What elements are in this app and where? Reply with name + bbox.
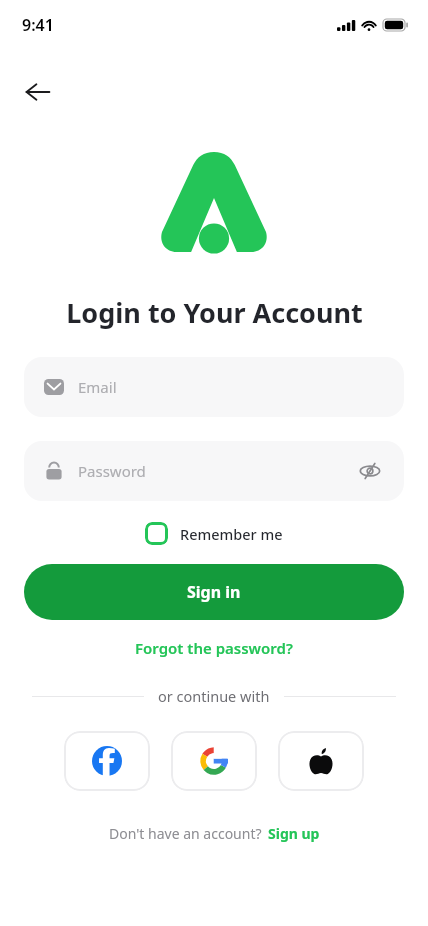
button[interactable]: Sign in with Apple (278, 731, 364, 791)
staticText: Sign up (268, 824, 320, 843)
button[interactable]: Sign in (24, 564, 404, 620)
staticText: or continue with (158, 686, 270, 706)
button[interactable]: Email (24, 357, 404, 417)
button[interactable]: Sign in with Google (171, 731, 257, 791)
staticText: Password (78, 461, 146, 481)
button[interactable]: Password (24, 441, 404, 501)
button[interactable]: Don't have an account? (99, 818, 330, 849)
button[interactable]: Sign in with Facebook (64, 731, 150, 791)
button[interactable]: Show password (356, 457, 384, 485)
staticText: Forgot the password? (135, 638, 293, 658)
button[interactable]: Back (18, 72, 58, 112)
staticText: Sign in (187, 581, 241, 603)
staticText: Don't have an account? (109, 824, 262, 843)
staticText: Remember me (180, 524, 283, 544)
staticText: Email (78, 377, 117, 397)
button[interactable]: Remember me (137, 516, 291, 551)
button[interactable]: Forgot the password? (123, 632, 305, 664)
staticText: 9:41 (22, 14, 54, 36)
staticText: Login to Your Account (66, 294, 363, 331)
